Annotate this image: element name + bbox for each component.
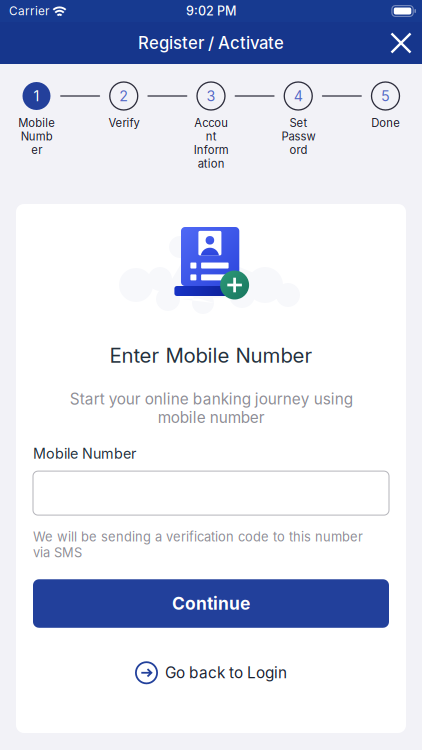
staticText: Accou nt Inform ation	[193, 116, 228, 170]
button[interactable]: Close	[380, 22, 422, 64]
staticText: Enter Mobile Number	[109, 343, 312, 368]
staticText: Start your online banking journey using …	[69, 390, 352, 427]
staticText: Verify	[108, 116, 139, 130]
staticText: Carrier	[9, 4, 49, 18]
button[interactable]: Go back to Login	[33, 651, 389, 695]
staticText: Go back to Login	[165, 663, 287, 682]
staticText: Done	[371, 116, 400, 130]
staticText: We will be sending a verification code t…	[33, 529, 363, 560]
staticText: 5	[381, 87, 390, 105]
staticText: 2	[119, 87, 128, 105]
button[interactable]: Continue	[33, 579, 389, 628]
staticText: 9:02 PM	[186, 3, 236, 19]
staticText: Continue	[172, 593, 250, 614]
staticText: Register / Activate	[138, 33, 284, 53]
staticText: 1	[33, 87, 39, 105]
staticText: Set Passw ord	[281, 116, 315, 157]
staticText: 3	[206, 87, 215, 105]
staticText: 4	[294, 87, 303, 105]
staticText: Mobile Numb er	[18, 116, 55, 157]
staticText: Mobile Number	[33, 445, 136, 462]
